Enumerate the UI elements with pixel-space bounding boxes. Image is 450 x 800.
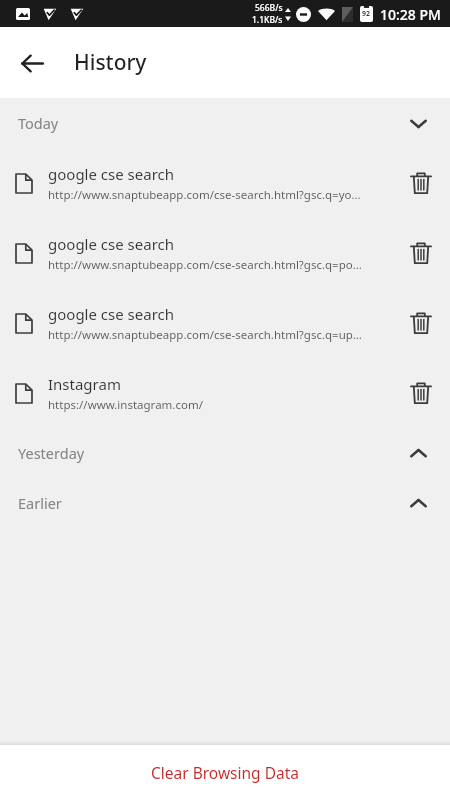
button[interactable]: Today [0, 98, 450, 148]
staticText: 1.1KB/s [252, 14, 283, 26]
staticText: google cse search [48, 304, 175, 324]
button[interactable]: Delete [392, 358, 450, 428]
staticText: Instagram [48, 374, 121, 394]
staticText: http://www.snaptubeapp.com/cse-search.ht… [48, 257, 362, 273]
button[interactable]: google cse search [0, 218, 450, 288]
button[interactable]: Clear Browsing Data [0, 745, 450, 800]
button[interactable]: Delete [392, 288, 450, 358]
staticText: 566B/s [255, 2, 283, 14]
staticText: https://www.instagram.com/ [48, 397, 203, 413]
button[interactable]: Yesterday [0, 428, 450, 478]
staticText: 92 [362, 9, 371, 19]
staticText: google cse search [48, 164, 175, 184]
staticText: http://www.snaptubeapp.com/cse-search.ht… [48, 327, 362, 343]
staticText: Clear Browsing Data [151, 762, 299, 783]
staticText: http://www.snaptubeapp.com/cse-search.ht… [48, 187, 361, 203]
button[interactable]: Delete [392, 218, 450, 288]
staticText: google cse search [48, 234, 175, 254]
button[interactable]: Instagram [0, 358, 450, 428]
staticText: 10:28 PM [380, 5, 441, 24]
button[interactable]: Delete [392, 148, 450, 218]
staticText: Today [18, 113, 59, 133]
staticText: History [74, 48, 147, 77]
staticText: Earlier [18, 493, 62, 513]
staticText: Yesterday [18, 443, 85, 463]
button[interactable]: google cse search [0, 288, 450, 358]
button[interactable]: google cse search [0, 148, 450, 218]
button[interactable]: Back [8, 39, 56, 87]
button[interactable]: Earlier [0, 478, 450, 528]
